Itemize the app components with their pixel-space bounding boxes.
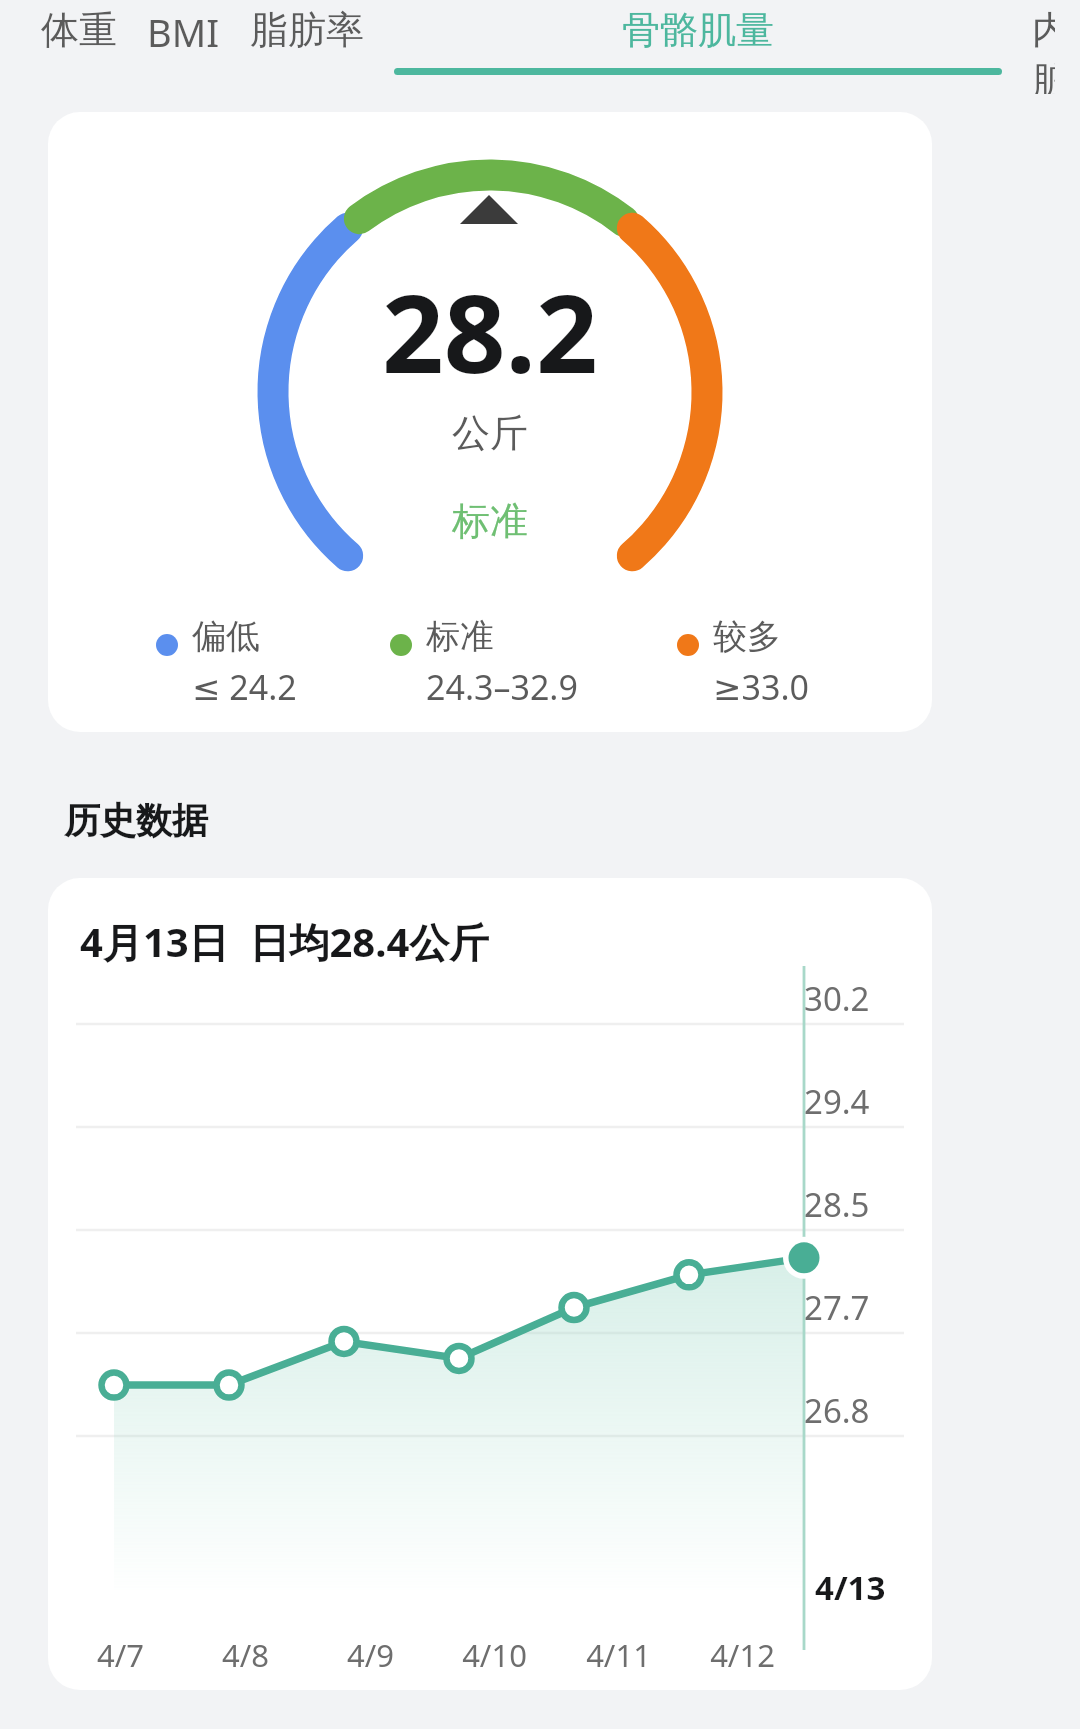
- staticText: 公斤: [452, 409, 528, 457]
- staticText: BMI: [147, 6, 220, 58]
- staticText: 4/7: [97, 1634, 144, 1676]
- staticText: 4/12: [710, 1634, 775, 1676]
- button[interactable]: 内脏脂肪等级: [1017, 0, 1070, 100]
- staticText: 内脏脂肪等级: [1032, 6, 1055, 94]
- staticText: 脂肪率: [250, 6, 364, 54]
- staticText: 4/10: [462, 1634, 527, 1676]
- staticText: 27.7: [804, 1285, 870, 1330]
- staticText: 28.2: [382, 258, 598, 405]
- staticText: 4/11: [586, 1634, 651, 1676]
- staticText: 体重: [41, 6, 117, 54]
- staticText: 较多: [713, 615, 781, 658]
- staticText: 标准: [426, 615, 494, 658]
- button[interactable]: 体重: [26, 0, 132, 74]
- staticText: 4/9: [347, 1634, 394, 1676]
- button[interactable]: BMI: [132, 0, 235, 78]
- staticText: 24.3–32.9: [426, 664, 578, 710]
- staticText: 29.4: [804, 1079, 870, 1124]
- staticText: 骨骼肌量: [622, 6, 774, 54]
- staticText: 4/13: [815, 1565, 886, 1610]
- button[interactable]: 骨骼肌量: [379, 0, 1017, 81]
- staticText: 4月13日 日均28.4公斤: [80, 914, 490, 969]
- staticText: ≥33.0: [713, 664, 809, 710]
- staticText: 历史数据: [64, 798, 208, 843]
- staticText: 26.8: [804, 1388, 870, 1433]
- staticText: ≤ 24.2: [192, 664, 297, 710]
- staticText: 偏低: [192, 615, 260, 658]
- staticText: 30.2: [804, 976, 870, 1021]
- button[interactable]: 脂肪率: [235, 0, 379, 74]
- staticText: 标准: [452, 497, 528, 545]
- staticText: 28.5: [804, 1182, 870, 1227]
- staticText: 4/8: [222, 1634, 269, 1676]
